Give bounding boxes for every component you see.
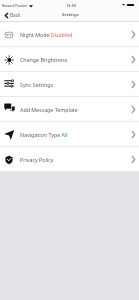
staticText: Sync Settings	[20, 81, 53, 88]
staticText: Add Message Template	[20, 106, 78, 113]
button[interactable]: Sync Settings	[0, 72, 139, 97]
staticText: Change Brightness	[20, 56, 68, 63]
staticText: Navigation Type All	[20, 131, 68, 138]
button[interactable]: Navigation Type All	[0, 122, 139, 147]
staticText: Night Mode Disabled	[20, 31, 73, 38]
staticText: Privacy Policy	[20, 156, 54, 163]
staticText: Network Provider	[2, 4, 28, 8]
staticText: Settings	[62, 12, 79, 18]
button[interactable]: Add Message Template	[0, 97, 139, 122]
button[interactable]: Night Mode Disabled	[0, 22, 139, 47]
staticText: Back	[10, 12, 21, 18]
staticText: 14:50	[66, 3, 77, 8]
button[interactable]: Back	[0, 12, 24, 18]
button[interactable]: Change Brightness	[0, 47, 139, 72]
button[interactable]: Privacy Policy	[0, 147, 139, 172]
